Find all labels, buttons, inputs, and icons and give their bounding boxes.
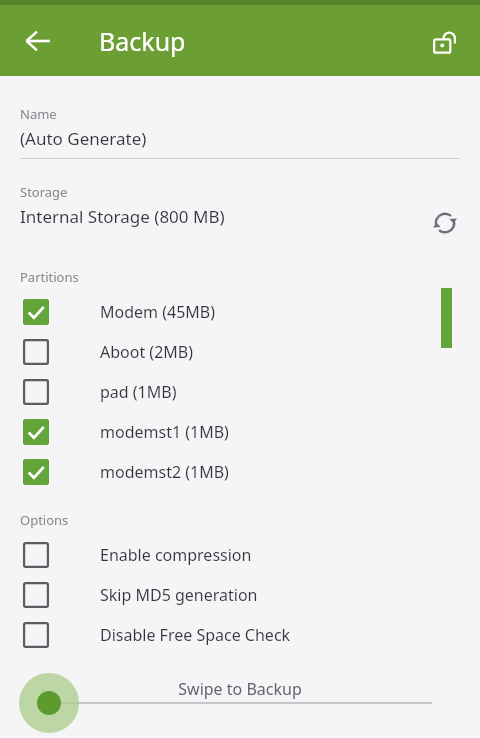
button[interactable]: Disable Free Space Check (0, 615, 480, 655)
staticText: Modem (45MB) (100, 301, 215, 323)
staticText: modemst2 (1MB) (100, 461, 229, 483)
staticText: Swipe to Backup (178, 678, 302, 700)
staticText: Options (20, 511, 69, 529)
staticText: pad (1MB) (100, 381, 177, 403)
staticText: Enable compression (100, 544, 252, 566)
button[interactable]: Refresh storage (425, 203, 465, 243)
button[interactable]: Swipe to Backup (0, 660, 480, 738)
staticText: Storage (20, 183, 68, 201)
button[interactable]: Skip MD5 generation (0, 575, 480, 615)
staticText: Aboot (2MB) (100, 341, 194, 363)
staticText: Skip MD5 generation (100, 584, 258, 606)
button[interactable]: Enable compression (0, 535, 480, 575)
staticText: (Auto Generate) (20, 127, 147, 150)
button[interactable]: Modem (45MB) (0, 292, 480, 332)
button[interactable]: pad (1MB) (0, 372, 480, 412)
staticText: Partitions (20, 268, 79, 286)
button[interactable]: Back (14, 17, 62, 65)
button[interactable]: Unlocked (420, 18, 466, 64)
staticText: Backup (99, 24, 186, 58)
staticText: modemst1 (1MB) (100, 421, 229, 443)
button[interactable]: modemst1 (1MB) (0, 412, 480, 452)
button[interactable]: modemst2 (1MB) (0, 452, 480, 492)
button[interactable]: Aboot (2MB) (0, 332, 480, 372)
staticText: Internal Storage (800 MB) (20, 205, 225, 228)
staticText: Disable Free Space Check (100, 624, 291, 646)
staticText: Name (20, 105, 57, 123)
